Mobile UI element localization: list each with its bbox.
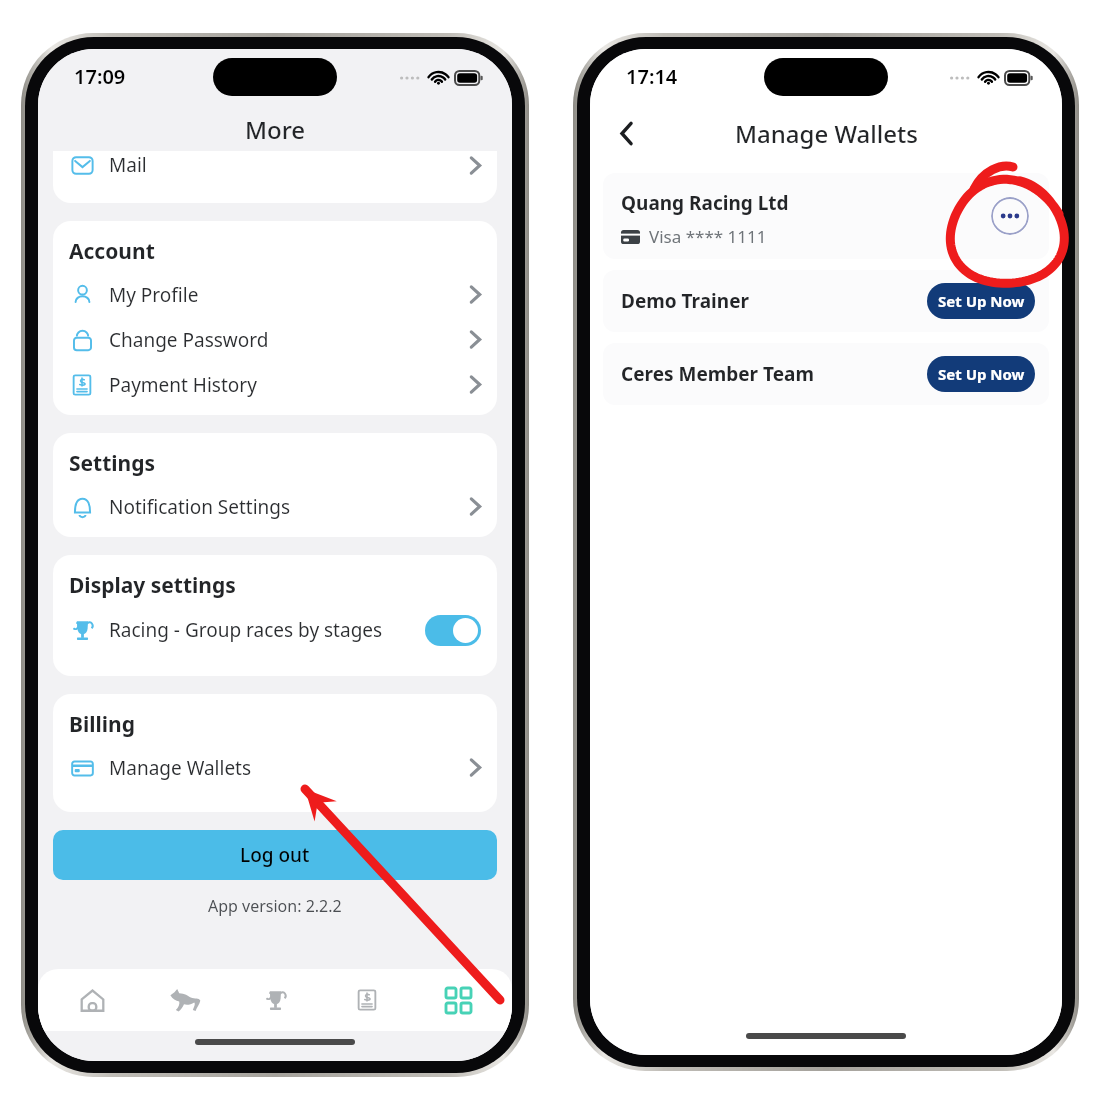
button[interactable]: More options [991, 197, 1029, 235]
staticText: Notification Settings [109, 494, 291, 520]
staticText: More [245, 113, 306, 146]
button[interactable]: Racing - Group races by stages [53, 606, 497, 654]
staticText: Racing - Group races by stages [109, 617, 383, 643]
button[interactable]: Demo Trainer [603, 270, 1049, 332]
button[interactable]: Log out [53, 830, 497, 880]
button[interactable]: Notification Settings [53, 484, 497, 529]
button[interactable]: Results [243, 972, 307, 1028]
staticText: Set Up Now [938, 291, 1025, 311]
button[interactable]: My Profile [53, 272, 497, 317]
button[interactable]: Set Up Now [927, 283, 1035, 319]
staticText: Manage Wallets [109, 755, 252, 781]
button[interactable]: Back [606, 113, 646, 153]
staticText: Visa **** 1111 [649, 225, 767, 248]
button[interactable]: Home [60, 972, 124, 1028]
staticText: Settings [69, 449, 156, 478]
button[interactable]: Manage Wallets [53, 745, 497, 790]
staticText: Payment History [109, 372, 257, 398]
staticText: App version: 2.2.2 [208, 895, 342, 917]
button[interactable]: Group races by stages toggle [425, 615, 481, 646]
staticText: Display settings [69, 571, 236, 600]
staticText: Mail [109, 152, 147, 178]
staticText: Account [69, 237, 155, 266]
button[interactable]: Set Up Now [927, 356, 1035, 392]
staticText: My Profile [109, 282, 199, 308]
staticText: 17:09 [74, 63, 126, 90]
button[interactable]: Change Password [53, 317, 497, 362]
staticText: Ceres Member Team [621, 361, 814, 387]
button[interactable]: Racing [152, 972, 216, 1028]
staticText: 17:14 [626, 63, 678, 90]
button[interactable]: Payments [335, 972, 399, 1028]
staticText: Demo Trainer [621, 288, 749, 314]
staticText: Set Up Now [938, 364, 1025, 384]
staticText: Log out [240, 842, 310, 868]
button[interactable]: More [426, 972, 490, 1028]
button[interactable]: Mail [53, 151, 497, 191]
button[interactable]: Payment History [53, 362, 497, 407]
button[interactable]: Quang Racing Ltd [603, 173, 1049, 259]
staticText: Change Password [109, 327, 269, 353]
button[interactable]: Ceres Member Team [603, 343, 1049, 405]
staticText: Quang Racing Ltd [621, 190, 789, 216]
staticText: Billing [69, 710, 135, 739]
staticText: Manage Wallets [735, 117, 918, 150]
